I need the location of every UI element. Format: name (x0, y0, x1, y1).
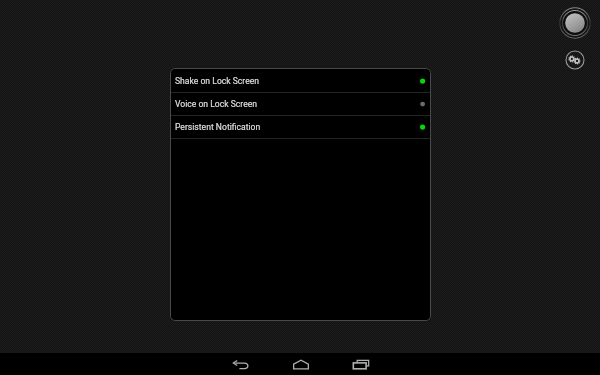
button[interactable]: Back (226, 353, 256, 375)
button[interactable]: Home (286, 353, 316, 375)
button[interactable]: Settings (565, 50, 585, 70)
button[interactable]: Voice on Lock Screen (170, 93, 431, 116)
button[interactable]: Shake on Lock Screen (170, 70, 431, 93)
staticText: Voice on Lock Screen (175, 99, 258, 109)
staticText: Persistent Notification (175, 122, 261, 132)
staticText: Shake on Lock Screen (175, 76, 260, 86)
button[interactable]: Persistent Notification (170, 116, 431, 139)
button[interactable]: Recent apps (346, 353, 376, 375)
button[interactable]: Record (559, 7, 591, 39)
